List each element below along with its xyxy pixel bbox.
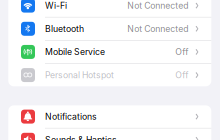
button[interactable]: Mobile Service [8,41,211,63]
staticText: Notifications [45,111,97,122]
button[interactable]: Personal Hotspot [8,64,211,86]
staticText: Not Connected [127,23,188,34]
button[interactable]: Notifications [8,105,211,128]
staticText: Off [175,70,188,80]
button[interactable]: Wi-Fi [8,0,211,17]
staticText: Sounds & Haptics [45,134,117,140]
staticText: Bluetooth [45,23,84,34]
staticText: Personal Hotspot [45,70,114,80]
staticText: Off [175,47,188,57]
staticText: Mobile Service [45,47,105,57]
button[interactable]: Sounds & Haptics [8,129,211,140]
staticText: Wi-Fi [45,0,67,11]
button[interactable]: Bluetooth [8,17,211,40]
staticText: Not Connected [127,0,188,11]
